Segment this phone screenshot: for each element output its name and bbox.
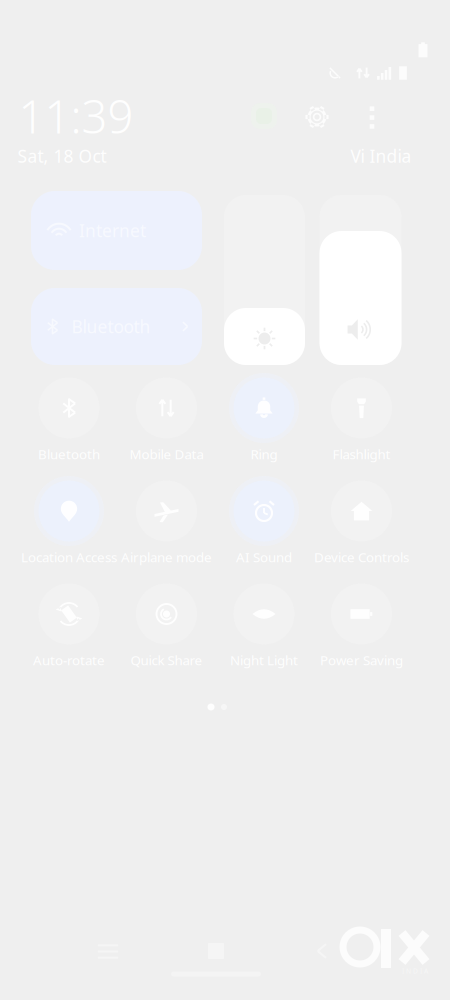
- staticText: Location Access: [21, 548, 117, 566]
- staticText: Airplane mode: [121, 548, 212, 566]
- button[interactable]: Brightness: [224, 195, 305, 365]
- button[interactable]: Location Access: [20, 480, 117, 572]
- staticText: Night Light: [230, 651, 298, 669]
- staticText: Vi India: [350, 144, 411, 167]
- button[interactable]: Back: [295, 929, 349, 973]
- staticText: Sat, 18 Oct: [17, 144, 106, 167]
- staticText: Auto-rotate: [33, 651, 105, 669]
- staticText: Ring: [250, 445, 277, 463]
- button[interactable]: Ring: [215, 377, 312, 469]
- staticText: Internet: [79, 219, 146, 242]
- staticText: Quick Share: [130, 651, 202, 669]
- staticText: Bluetooth: [71, 315, 150, 338]
- staticText: Flashlight: [332, 445, 390, 463]
- staticText: Power Saving: [320, 651, 403, 669]
- button[interactable]: Settings: [300, 100, 334, 134]
- button[interactable]: Volume: [319, 195, 401, 365]
- staticText: 11:39: [18, 86, 133, 146]
- button[interactable]: Scan QR code: [249, 101, 279, 131]
- staticText: Device Controls: [314, 548, 409, 566]
- button[interactable]: AI Sound: [215, 480, 312, 572]
- staticText: Bluetooth: [38, 445, 100, 463]
- staticText: AI Sound: [236, 548, 292, 566]
- staticText: Mobile Data: [129, 445, 203, 463]
- button[interactable]: Device Controls: [313, 480, 410, 572]
